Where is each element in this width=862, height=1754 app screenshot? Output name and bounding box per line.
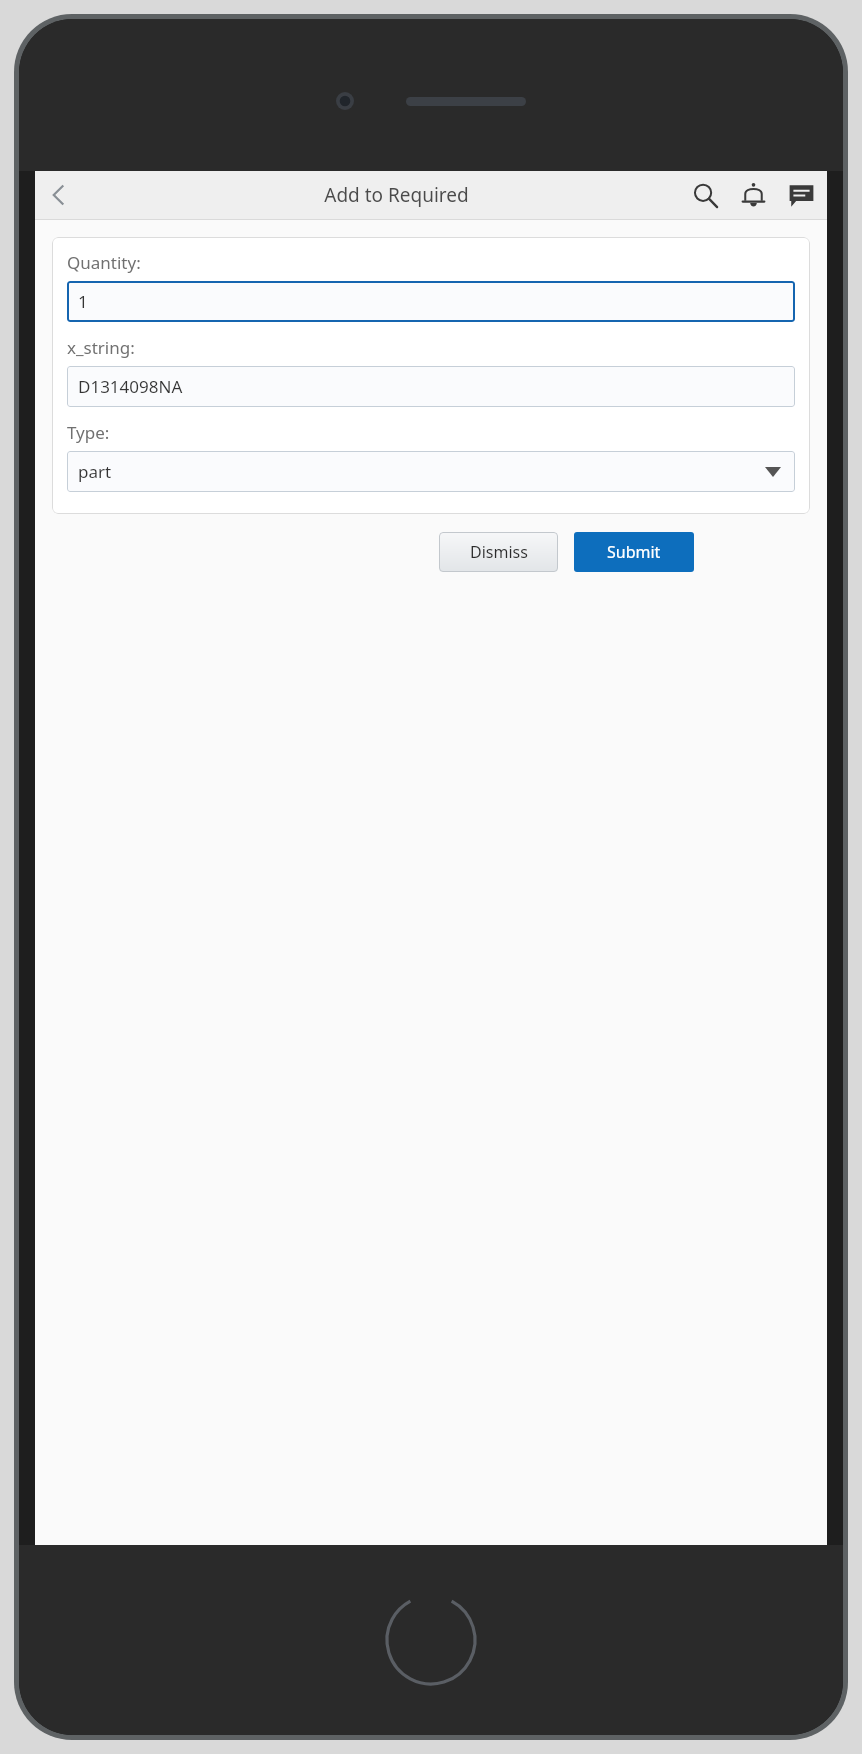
- staticText: D1314098NA: [78, 375, 183, 398]
- button[interactable]: 1: [67, 281, 795, 322]
- staticText: 1: [78, 290, 88, 313]
- button[interactable]: Dismiss: [439, 532, 558, 572]
- staticText: Submit: [607, 541, 661, 563]
- button[interactable]: D1314098NA: [67, 366, 795, 407]
- staticText: Add to Required: [324, 182, 469, 208]
- staticText: x_string:: [67, 336, 135, 359]
- staticText: part: [78, 460, 112, 483]
- button[interactable]: Submit: [574, 532, 694, 572]
- button[interactable]: Search: [681, 171, 729, 219]
- staticText: Type:: [67, 421, 110, 444]
- button[interactable]: Back: [35, 171, 83, 219]
- staticText: Dismiss: [470, 541, 528, 563]
- button[interactable]: part: [67, 451, 795, 492]
- staticText: Quantity:: [67, 251, 141, 274]
- button[interactable]: Messages: [777, 171, 825, 219]
- button[interactable]: Notifications: [729, 171, 777, 219]
